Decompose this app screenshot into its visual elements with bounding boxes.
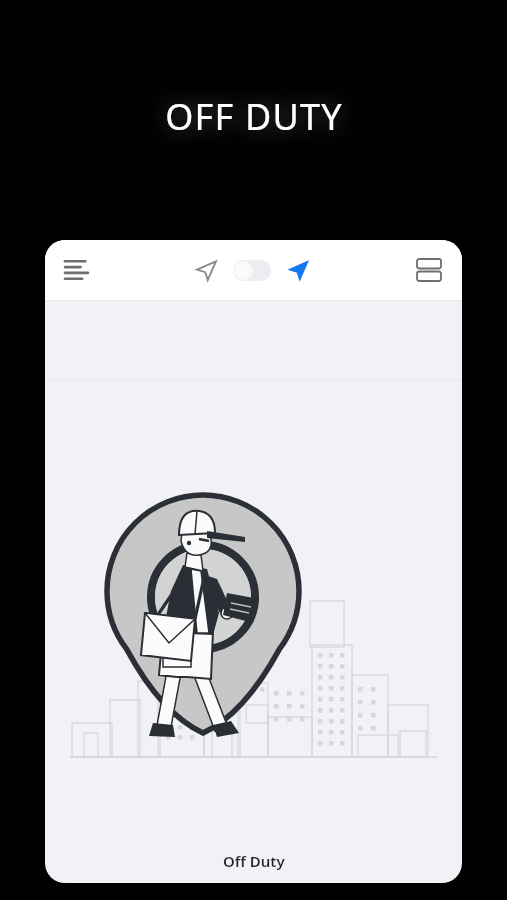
button[interactable]: Offline navigation: [187, 251, 225, 289]
button[interactable]: Online navigation: [279, 251, 317, 289]
staticText: Off Duty: [223, 851, 285, 871]
button[interactable]: Duty toggle: [229, 253, 275, 287]
staticText: OFF DUTY: [165, 92, 343, 141]
button[interactable]: Menu: [56, 248, 100, 292]
button[interactable]: Layout: [407, 248, 451, 292]
